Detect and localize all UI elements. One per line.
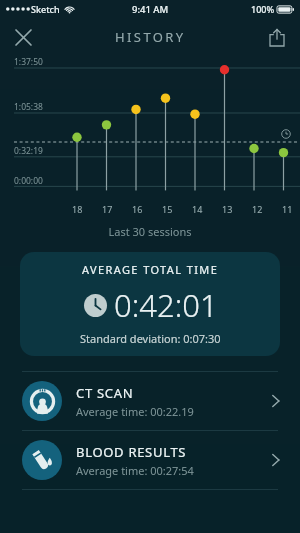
- staticText: HISTORY: [115, 28, 186, 46]
- staticText: 18: [72, 203, 83, 215]
- staticText: 16: [132, 203, 143, 215]
- staticText: 17: [102, 203, 113, 215]
- staticText: 14: [192, 203, 203, 215]
- staticText: 0:32:19: [14, 145, 43, 157]
- staticText: 13: [222, 203, 233, 215]
- staticText: 9:41 AM: [132, 3, 169, 16]
- staticText: Standard deviation: 0:07:30: [80, 331, 221, 346]
- button[interactable]: CT SCAN: [0, 372, 300, 430]
- staticText: Last 30 sessions: [0, 224, 300, 239]
- staticText: CT SCAN: [76, 384, 134, 402]
- staticText: 100%: [251, 3, 275, 15]
- staticText: 1:37:50: [14, 56, 43, 68]
- button[interactable]: Close: [6, 20, 40, 54]
- staticText: Average time: 00:22.19: [76, 404, 194, 419]
- staticText: AVERAGE TOTAL TIME: [82, 262, 219, 277]
- button[interactable]: BLOOD RESULTS: [0, 431, 300, 489]
- staticText: BLOOD RESULTS: [76, 443, 187, 461]
- staticText: Sketch: [31, 3, 60, 15]
- staticText: Average time: 00:27:54: [76, 463, 194, 478]
- button[interactable]: AVERAGE TOTAL TIME: [20, 252, 280, 356]
- staticText: 11: [282, 203, 293, 215]
- staticText: 0:00:00: [14, 175, 43, 187]
- staticText: 0:42:01: [114, 284, 218, 326]
- staticText: 15: [162, 203, 173, 215]
- staticText: 12: [252, 203, 263, 215]
- button[interactable]: Share: [260, 20, 294, 54]
- staticText: 1:05:38: [14, 101, 43, 113]
